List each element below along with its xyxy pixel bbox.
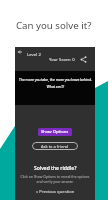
button[interactable]: « Previous question <box>36 189 75 195</box>
button[interactable]: Ask to a friend <box>32 142 78 150</box>
staticText: Ask to a friend <box>41 144 69 149</box>
button[interactable]: Share <box>79 55 88 64</box>
staticText: Solved the riddle? <box>34 165 77 172</box>
button[interactable]: Back <box>16 48 23 55</box>
staticText: Your Score: 0 <box>49 57 75 63</box>
staticText: The more you take, the more you leave be… <box>19 77 92 89</box>
staticText: Level 2 <box>27 51 41 57</box>
button[interactable]: Show Options <box>38 128 72 136</box>
staticText: Click on Show Options to reveal the opti… <box>19 174 91 184</box>
staticText: Show Options <box>41 129 69 135</box>
staticText: Can you solve it? <box>16 19 92 32</box>
